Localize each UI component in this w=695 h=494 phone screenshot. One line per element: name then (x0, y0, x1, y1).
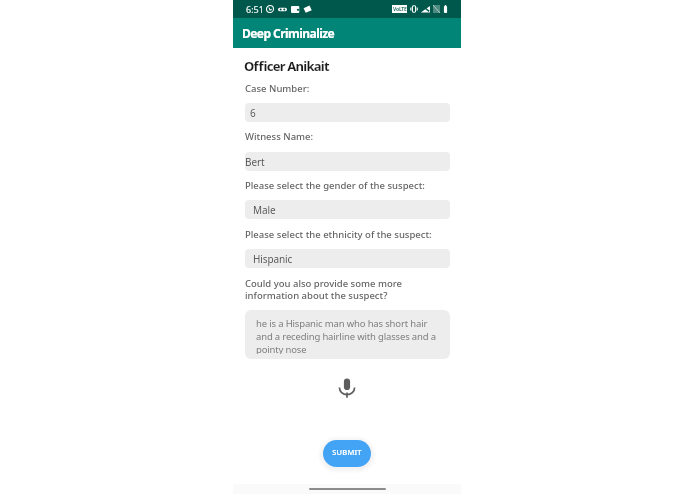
button[interactable]: 6 (245, 103, 450, 122)
staticText: 6:51 (246, 3, 264, 15)
button[interactable]: Hispanic (245, 249, 450, 268)
staticText: Male (253, 203, 276, 217)
button[interactable]: SUBMIT (323, 440, 371, 467)
staticText: Officer Anikait (244, 57, 329, 75)
staticText: Deep Criminalize (242, 25, 335, 41)
button[interactable]: Bert (245, 152, 450, 171)
staticText: he is a Hispanic man who has short hair … (256, 317, 445, 354)
staticText: SUBMIT (332, 447, 362, 457)
staticText: Case Number: (245, 82, 310, 95)
button[interactable]: he is a Hispanic man who has short hair … (245, 310, 450, 359)
staticText: Bert (245, 155, 265, 169)
staticText: Please select the ethnicity of the suspe… (245, 228, 432, 241)
staticText: Could you also provide some more informa… (245, 277, 402, 302)
staticText: Witness Name: (245, 130, 314, 143)
staticText: 6 (250, 106, 256, 120)
staticText: Please select the gender of the suspect: (245, 179, 425, 192)
button[interactable]: Voice input (333, 374, 361, 402)
button[interactable]: Male (245, 200, 450, 219)
staticText: VoLTE (393, 6, 407, 13)
staticText: Hispanic (253, 252, 293, 266)
